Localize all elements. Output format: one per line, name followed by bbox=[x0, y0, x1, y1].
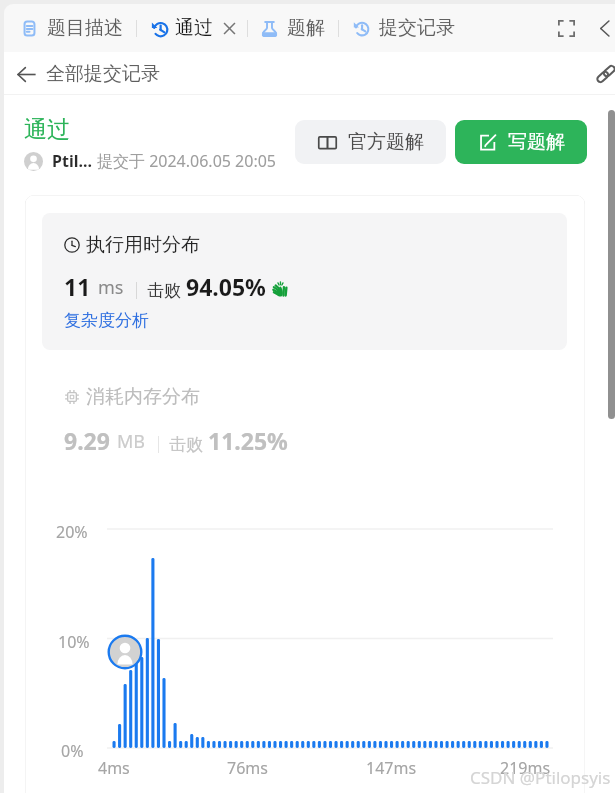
button[interactable]: Collapse panel bbox=[593, 16, 615, 40]
staticText: 20% bbox=[56, 521, 88, 543]
button[interactable]: 提交记录 bbox=[339, 4, 468, 52]
staticText: 提交于 2024.06.05 20:05 bbox=[97, 150, 277, 172]
staticText: 0% bbox=[61, 740, 84, 762]
staticText: 147ms bbox=[366, 757, 417, 779]
button[interactable]: 题解 bbox=[248, 4, 338, 52]
button[interactable]: Close tab bbox=[218, 17, 240, 39]
staticText: 11.25% bbox=[208, 425, 288, 456]
button[interactable]: 写题解 bbox=[455, 120, 587, 164]
staticText: ms bbox=[98, 275, 124, 300]
button[interactable]: 复杂度分析 bbox=[64, 310, 149, 331]
staticText: 复杂度分析 bbox=[64, 310, 149, 331]
staticText: 官方题解 bbox=[348, 130, 424, 154]
staticText: CSDN @Ptilopsyis bbox=[470, 766, 611, 789]
button[interactable]: Back bbox=[13, 61, 39, 87]
button[interactable]: Copy link bbox=[593, 61, 615, 87]
button[interactable]: 题目描述 bbox=[9, 4, 136, 52]
staticText: 消耗内存分布 bbox=[86, 385, 200, 409]
staticText: MB bbox=[117, 429, 146, 454]
button[interactable]: Fullscreen bbox=[551, 13, 581, 43]
staticText: 击败 bbox=[147, 280, 181, 301]
staticText: 76ms bbox=[227, 757, 268, 779]
staticText: 通过 bbox=[24, 115, 70, 144]
staticText: Ptil... bbox=[52, 150, 92, 172]
staticText: 9.29 bbox=[64, 425, 110, 456]
staticText: 执行用时分布 bbox=[86, 233, 200, 257]
staticText: 4ms bbox=[98, 757, 130, 779]
staticText: 题解 bbox=[287, 16, 325, 40]
staticText: 通过 bbox=[175, 16, 213, 40]
staticText: 击败 bbox=[169, 434, 203, 455]
staticText: 10% bbox=[58, 631, 90, 653]
button[interactable]: 官方题解 bbox=[295, 120, 446, 164]
staticText: 11 bbox=[64, 271, 91, 302]
staticText: 题目描述 bbox=[47, 16, 123, 40]
button[interactable]: 通过 bbox=[137, 4, 247, 52]
staticText: 写题解 bbox=[508, 130, 565, 154]
staticText: 219ms bbox=[500, 757, 551, 779]
staticText: 提交记录 bbox=[379, 16, 455, 40]
staticText: 94.05% bbox=[186, 271, 266, 302]
staticText: 全部提交记录 bbox=[46, 62, 160, 86]
